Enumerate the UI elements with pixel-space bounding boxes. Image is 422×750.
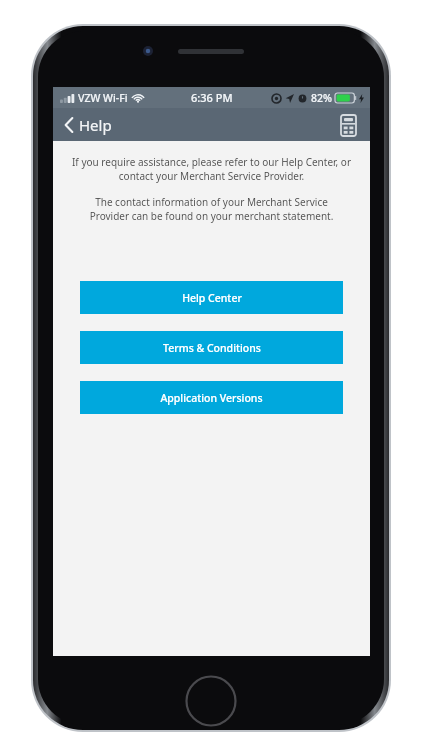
staticText: Terms & Conditions bbox=[163, 341, 261, 355]
staticText: Help bbox=[79, 115, 112, 135]
staticText: VZW Wi-Fi bbox=[78, 91, 128, 105]
button[interactable]: Help Center bbox=[80, 281, 343, 314]
staticText: 82% bbox=[311, 91, 332, 105]
staticText: 6:36 PM bbox=[191, 90, 233, 105]
button[interactable]: Terms & Conditions bbox=[80, 331, 343, 364]
button[interactable]: Help bbox=[53, 108, 122, 141]
button[interactable]: Application Versions bbox=[80, 381, 343, 414]
staticText: Help Center bbox=[182, 291, 242, 305]
staticText: Application Versions bbox=[160, 391, 263, 405]
staticText: If you require assistance, please refer … bbox=[71, 155, 352, 183]
button[interactable]: Device bbox=[335, 111, 361, 139]
staticText: The contact information of your Merchant… bbox=[75, 195, 348, 223]
